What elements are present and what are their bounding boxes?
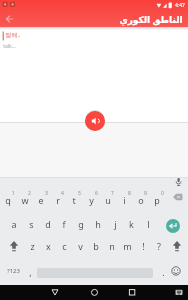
button[interactable]: ? bbox=[151, 236, 167, 256]
staticText: 1 bbox=[12, 190, 15, 197]
staticText: ! bbox=[142, 240, 145, 252]
staticText: ?123 bbox=[7, 267, 20, 275]
button[interactable]: s bbox=[23, 214, 39, 234]
staticText: g bbox=[78, 218, 84, 230]
button[interactable] bbox=[169, 190, 187, 206]
staticText: talk... bbox=[3, 43, 16, 50]
button[interactable]: n bbox=[104, 236, 120, 256]
button[interactable]: 2 bbox=[21, 183, 37, 203]
button[interactable] bbox=[166, 219, 180, 233]
button[interactable]: e bbox=[33, 190, 49, 210]
staticText: 4 bbox=[61, 190, 64, 197]
button[interactable] bbox=[6, 236, 22, 256]
button[interactable]: ! bbox=[135, 236, 151, 256]
button[interactable]: g bbox=[73, 214, 89, 234]
staticText: . bbox=[162, 266, 165, 278]
staticText: u bbox=[105, 194, 111, 206]
button[interactable]: c bbox=[56, 236, 72, 256]
button[interactable]: 6 bbox=[88, 183, 104, 203]
staticText: v bbox=[78, 240, 83, 252]
staticText: m bbox=[123, 240, 132, 252]
staticText: 0 bbox=[161, 190, 164, 197]
staticText: i bbox=[123, 194, 126, 206]
staticText: y bbox=[89, 194, 94, 206]
staticText: a bbox=[11, 218, 17, 230]
staticText: c bbox=[62, 240, 67, 252]
staticText: j bbox=[114, 218, 117, 230]
staticText: 8 bbox=[128, 190, 131, 197]
staticText: e bbox=[38, 194, 44, 206]
button[interactable]: q bbox=[0, 190, 16, 210]
staticText: 6 bbox=[95, 190, 98, 197]
button[interactable]: 0 bbox=[154, 183, 170, 203]
button[interactable]: 1 bbox=[5, 183, 21, 203]
button[interactable]: o bbox=[133, 190, 149, 210]
staticText: p bbox=[154, 194, 160, 206]
button[interactable]: 5 bbox=[71, 183, 87, 203]
button[interactable]: b bbox=[88, 236, 104, 256]
button[interactable] bbox=[169, 236, 185, 256]
staticText: 7 bbox=[111, 190, 114, 197]
staticText: 3 bbox=[45, 190, 48, 197]
button[interactable]: y bbox=[83, 190, 99, 210]
button[interactable]: . bbox=[155, 262, 171, 282]
staticText: 4:47 bbox=[175, 2, 185, 9]
button[interactable]: x bbox=[40, 236, 56, 256]
button[interactable]: m bbox=[119, 236, 135, 256]
button[interactable]: i bbox=[116, 190, 132, 210]
staticText: d bbox=[45, 218, 51, 230]
button[interactable]: ?123 bbox=[3, 261, 23, 280]
staticText: الناطق الكوري bbox=[119, 13, 183, 25]
button[interactable]: z bbox=[24, 236, 40, 256]
button[interactable]: 3 bbox=[38, 183, 54, 203]
button[interactable]: 8 bbox=[121, 183, 137, 203]
button[interactable]: a bbox=[6, 214, 22, 234]
button[interactable]: 7 bbox=[104, 183, 120, 203]
button[interactable]: r bbox=[50, 190, 66, 210]
staticText: 5 bbox=[78, 190, 81, 197]
button[interactable]: v bbox=[72, 236, 88, 256]
staticText: 9 bbox=[144, 190, 147, 197]
staticText: x bbox=[46, 240, 51, 252]
button[interactable]: u bbox=[100, 190, 116, 210]
staticText: r bbox=[56, 194, 60, 206]
staticText: z bbox=[30, 240, 35, 252]
button[interactable]: 9 bbox=[137, 183, 153, 203]
button[interactable]: 4 bbox=[54, 183, 70, 203]
button[interactable] bbox=[85, 111, 105, 131]
button[interactable]: d bbox=[40, 214, 56, 234]
staticText: b bbox=[93, 240, 99, 252]
staticText: k bbox=[129, 218, 134, 230]
staticText: ? bbox=[157, 240, 161, 252]
staticText: n bbox=[109, 240, 115, 252]
button[interactable]: f bbox=[56, 214, 72, 234]
button[interactable]: t bbox=[66, 190, 82, 210]
staticText: w bbox=[21, 194, 29, 206]
staticText: t bbox=[72, 194, 76, 206]
button[interactable]: j bbox=[107, 214, 123, 234]
staticText: 2 bbox=[28, 190, 31, 197]
button[interactable]: , bbox=[22, 262, 38, 282]
button[interactable] bbox=[2, 12, 18, 28]
staticText: 말해.. bbox=[5, 31, 21, 39]
staticText: s bbox=[29, 218, 34, 230]
staticText: q bbox=[5, 194, 11, 206]
staticText: , bbox=[29, 266, 32, 278]
staticText: f bbox=[62, 218, 66, 230]
button[interactable]: h bbox=[90, 214, 106, 234]
staticText: o bbox=[138, 194, 144, 206]
button[interactable] bbox=[168, 263, 184, 279]
button[interactable]: l bbox=[140, 214, 156, 234]
button[interactable]: w bbox=[17, 190, 33, 210]
staticText: h bbox=[95, 218, 101, 230]
staticText: l bbox=[147, 218, 150, 230]
button[interactable]: k bbox=[123, 214, 139, 234]
button[interactable]: p bbox=[149, 190, 165, 210]
